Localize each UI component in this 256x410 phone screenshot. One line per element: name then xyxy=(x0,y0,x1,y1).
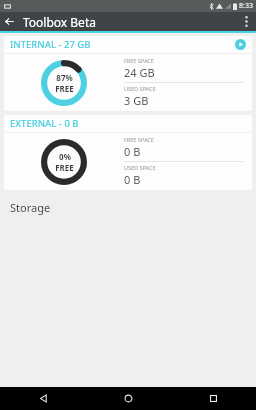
staticText: EXTERNAL - 0 B xyxy=(10,117,79,130)
staticText: 8:33 xyxy=(239,1,253,11)
button[interactable]: Recent apps xyxy=(171,387,256,410)
staticText: FREE xyxy=(55,83,74,94)
staticText: Toolbox Beta xyxy=(23,14,96,30)
button[interactable]: Back xyxy=(0,387,86,410)
staticText: FREE xyxy=(55,162,74,173)
button[interactable]: More options xyxy=(237,12,256,31)
staticText: 0 B xyxy=(124,172,141,187)
staticText: 24 GB xyxy=(124,65,155,80)
staticText: FREE SPACE xyxy=(124,136,154,143)
button[interactable]: INTERNAL - 27 GB xyxy=(4,36,252,111)
button[interactable]: EXTERNAL - 0 B xyxy=(4,115,252,190)
staticText: 0 B xyxy=(124,144,141,159)
staticText: INTERNAL - 27 GB xyxy=(10,38,91,51)
staticText: USED SPACE xyxy=(124,164,156,171)
staticText: Storage xyxy=(10,200,51,215)
staticText: 0% xyxy=(59,151,71,162)
staticText: 87% xyxy=(56,72,73,83)
button[interactable]: Home xyxy=(86,387,171,410)
staticText: 3 GB xyxy=(124,93,149,108)
staticText: USED SPACE xyxy=(124,85,156,92)
staticText: FREE SPACE xyxy=(124,57,154,64)
button[interactable]: Analyze xyxy=(234,38,247,51)
button[interactable]: Back xyxy=(0,12,19,31)
